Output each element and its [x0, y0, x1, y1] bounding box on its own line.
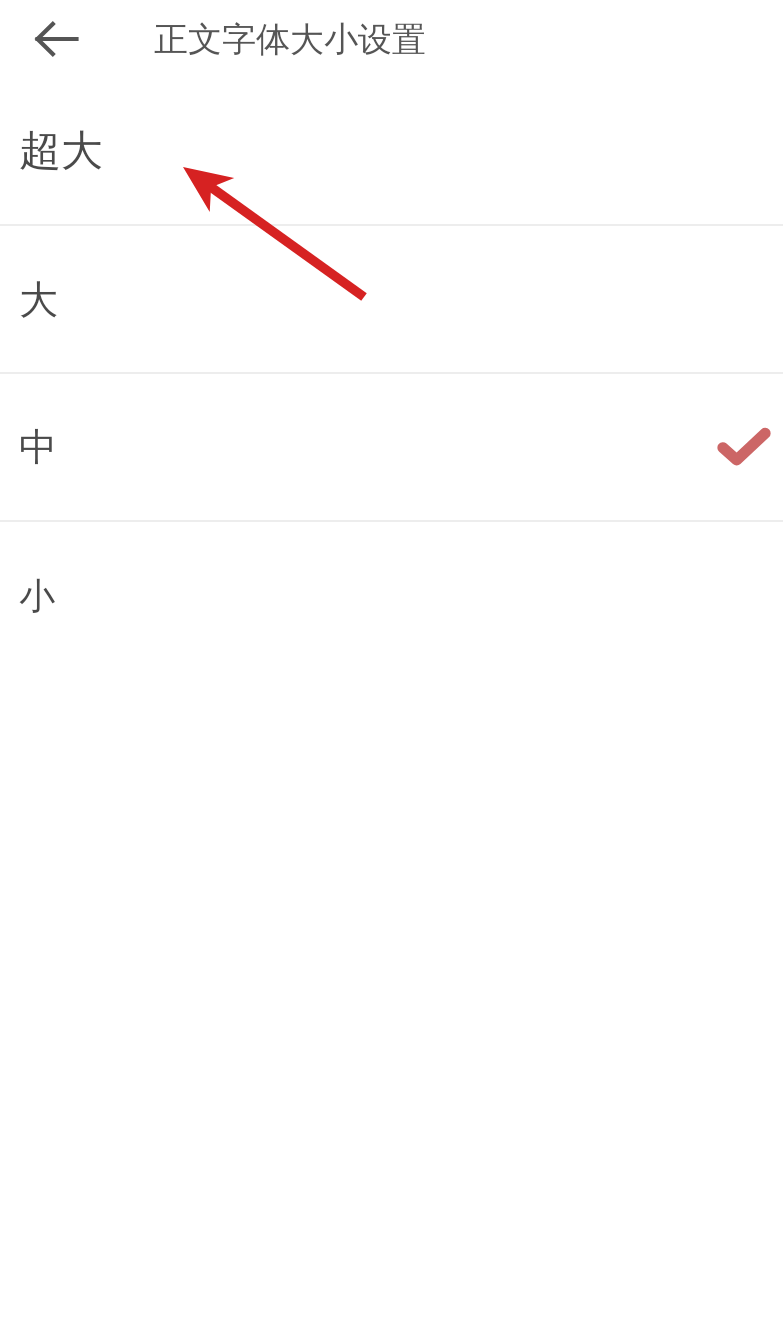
- staticText: 中: [19, 423, 721, 471]
- button[interactable]: Back: [17, 0, 97, 78]
- staticText: 正文字体大小设置: [154, 18, 426, 61]
- button[interactable]: 小: [0, 522, 783, 669]
- staticText: 小: [19, 573, 767, 618]
- staticText: 超大: [19, 125, 767, 178]
- button[interactable]: 中: [0, 374, 783, 520]
- button[interactable]: 超大: [0, 78, 783, 224]
- button[interactable]: 大: [0, 226, 783, 372]
- staticText: 大: [19, 275, 767, 324]
